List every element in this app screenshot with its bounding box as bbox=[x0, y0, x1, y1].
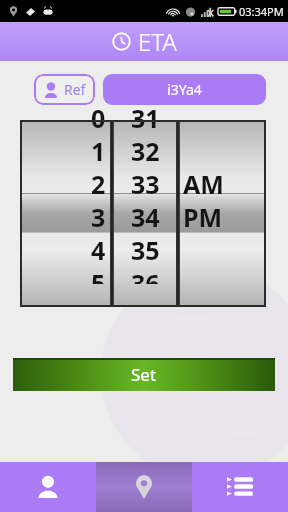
staticText: AM bbox=[183, 167, 224, 200]
staticText: Ref bbox=[64, 80, 86, 99]
staticText: 32 bbox=[131, 134, 160, 167]
staticText: 1 bbox=[91, 134, 106, 167]
staticText: i3Ya4 bbox=[167, 80, 202, 99]
staticText: PM bbox=[183, 200, 223, 233]
button[interactable]: Set bbox=[13, 358, 275, 391]
staticText: 3 bbox=[91, 200, 106, 233]
staticText: 33 bbox=[131, 167, 160, 200]
button[interactable]: Profile bbox=[0, 462, 96, 512]
staticText: 36 bbox=[131, 266, 160, 284]
button[interactable]: i3Ya4 bbox=[103, 74, 266, 105]
button[interactable]: 0 bbox=[20, 120, 266, 307]
staticText: 34 bbox=[131, 200, 160, 233]
staticText: ETA bbox=[138, 25, 177, 58]
staticText: 2 bbox=[91, 167, 106, 200]
staticText: 4 bbox=[91, 233, 106, 266]
button[interactable]: Ref bbox=[34, 74, 95, 105]
staticText: 31 bbox=[131, 101, 160, 134]
staticText: 0 bbox=[91, 101, 106, 134]
staticText: 03:34PM bbox=[239, 4, 284, 19]
button[interactable]: List bbox=[192, 462, 288, 512]
staticText: 35 bbox=[131, 233, 160, 266]
button[interactable]: Map bbox=[96, 462, 192, 512]
staticText: 5 bbox=[91, 266, 106, 284]
staticText: Set bbox=[131, 363, 157, 386]
